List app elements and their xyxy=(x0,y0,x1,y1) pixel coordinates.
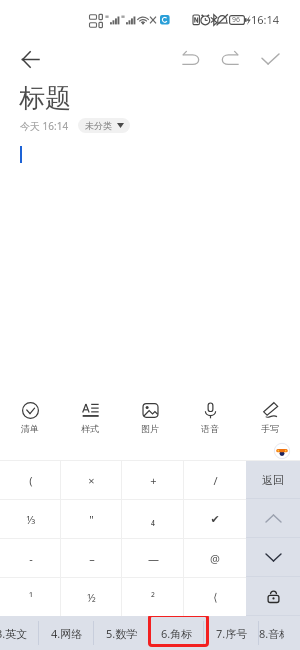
staticText: " xyxy=(89,512,94,527)
button[interactable]: 3.英文 xyxy=(0,616,39,650)
staticText: 样式 xyxy=(81,423,99,434)
staticText: ⟨ xyxy=(213,591,218,604)
staticText: + xyxy=(150,473,157,488)
staticText: 未分类 xyxy=(85,120,112,131)
staticText: 8.音标 xyxy=(259,626,284,641)
staticText: 语音 xyxy=(201,423,219,434)
button[interactable]: ✔ xyxy=(184,500,246,538)
button[interactable]: @ xyxy=(184,539,246,577)
staticText: 7.序号 xyxy=(216,626,248,641)
staticText: 16:14 xyxy=(251,12,280,27)
button[interactable]: - xyxy=(0,539,61,577)
staticText: 手写 xyxy=(261,423,279,434)
button[interactable]: Page up xyxy=(246,499,300,538)
staticText: / xyxy=(213,473,218,488)
button[interactable]: Undo xyxy=(172,41,208,77)
staticText: ✔ xyxy=(210,513,220,526)
button[interactable]: Keyboard logo xyxy=(274,443,290,459)
button[interactable]: 清单 xyxy=(0,402,60,436)
button[interactable]: × xyxy=(61,461,122,499)
button[interactable]: + xyxy=(122,461,184,499)
button[interactable]: – xyxy=(61,539,122,577)
button[interactable]: " xyxy=(61,500,122,538)
button[interactable]: Save xyxy=(252,41,288,77)
staticText: ² xyxy=(151,590,155,605)
staticText: × xyxy=(88,473,95,488)
button[interactable]: 5.数学 xyxy=(94,616,149,650)
button[interactable]: 8.音标 xyxy=(259,616,284,650)
staticText: ( xyxy=(29,473,33,488)
button[interactable]: 6.角标 xyxy=(149,616,204,650)
button[interactable]: — xyxy=(122,539,184,577)
staticText: — xyxy=(148,551,159,566)
button[interactable]: 图片 xyxy=(120,402,180,436)
staticText: ⅓ xyxy=(26,512,36,527)
button[interactable]: ⟨ xyxy=(184,578,246,616)
staticText: 3.英文 xyxy=(0,626,28,641)
button[interactable]: Lock xyxy=(246,577,300,616)
staticText: ₄ xyxy=(151,512,155,527)
staticText: ¹ xyxy=(29,590,33,605)
staticText: 返回 xyxy=(262,473,284,487)
staticText: 今天 16:14 xyxy=(20,119,69,133)
staticText: ½ xyxy=(87,590,96,605)
button[interactable]: Redo xyxy=(212,41,248,77)
staticText: 5.数学 xyxy=(106,626,138,641)
button[interactable]: 未分类 xyxy=(78,118,130,133)
button[interactable]: Back xyxy=(12,41,48,77)
button[interactable]: 语音 xyxy=(180,402,240,436)
staticText: 清单 xyxy=(21,423,39,434)
button[interactable]: ¹ xyxy=(0,578,61,616)
staticText: @ xyxy=(210,551,220,566)
button[interactable]: Return xyxy=(246,461,300,499)
button[interactable]: 7.序号 xyxy=(204,616,259,650)
staticText: 96 xyxy=(232,15,241,25)
staticText: 标题 xyxy=(19,82,71,115)
button[interactable]: ⅓ xyxy=(0,500,61,538)
staticText: 图片 xyxy=(141,423,159,434)
staticText: 4.网络 xyxy=(51,626,83,641)
button[interactable]: 4.网络 xyxy=(39,616,94,650)
button[interactable]: 手写 xyxy=(240,402,300,436)
button[interactable]: ₄ xyxy=(122,500,184,538)
button[interactable]: 样式 xyxy=(60,402,120,436)
button[interactable]: ( xyxy=(0,461,61,499)
button[interactable]: ² xyxy=(122,578,184,616)
staticText: – xyxy=(89,551,95,566)
button[interactable]: ½ xyxy=(61,578,122,616)
staticText: 6.角标 xyxy=(161,626,193,641)
staticText: - xyxy=(29,551,33,566)
button[interactable]: / xyxy=(184,461,246,499)
button[interactable]: Page down xyxy=(246,538,300,577)
